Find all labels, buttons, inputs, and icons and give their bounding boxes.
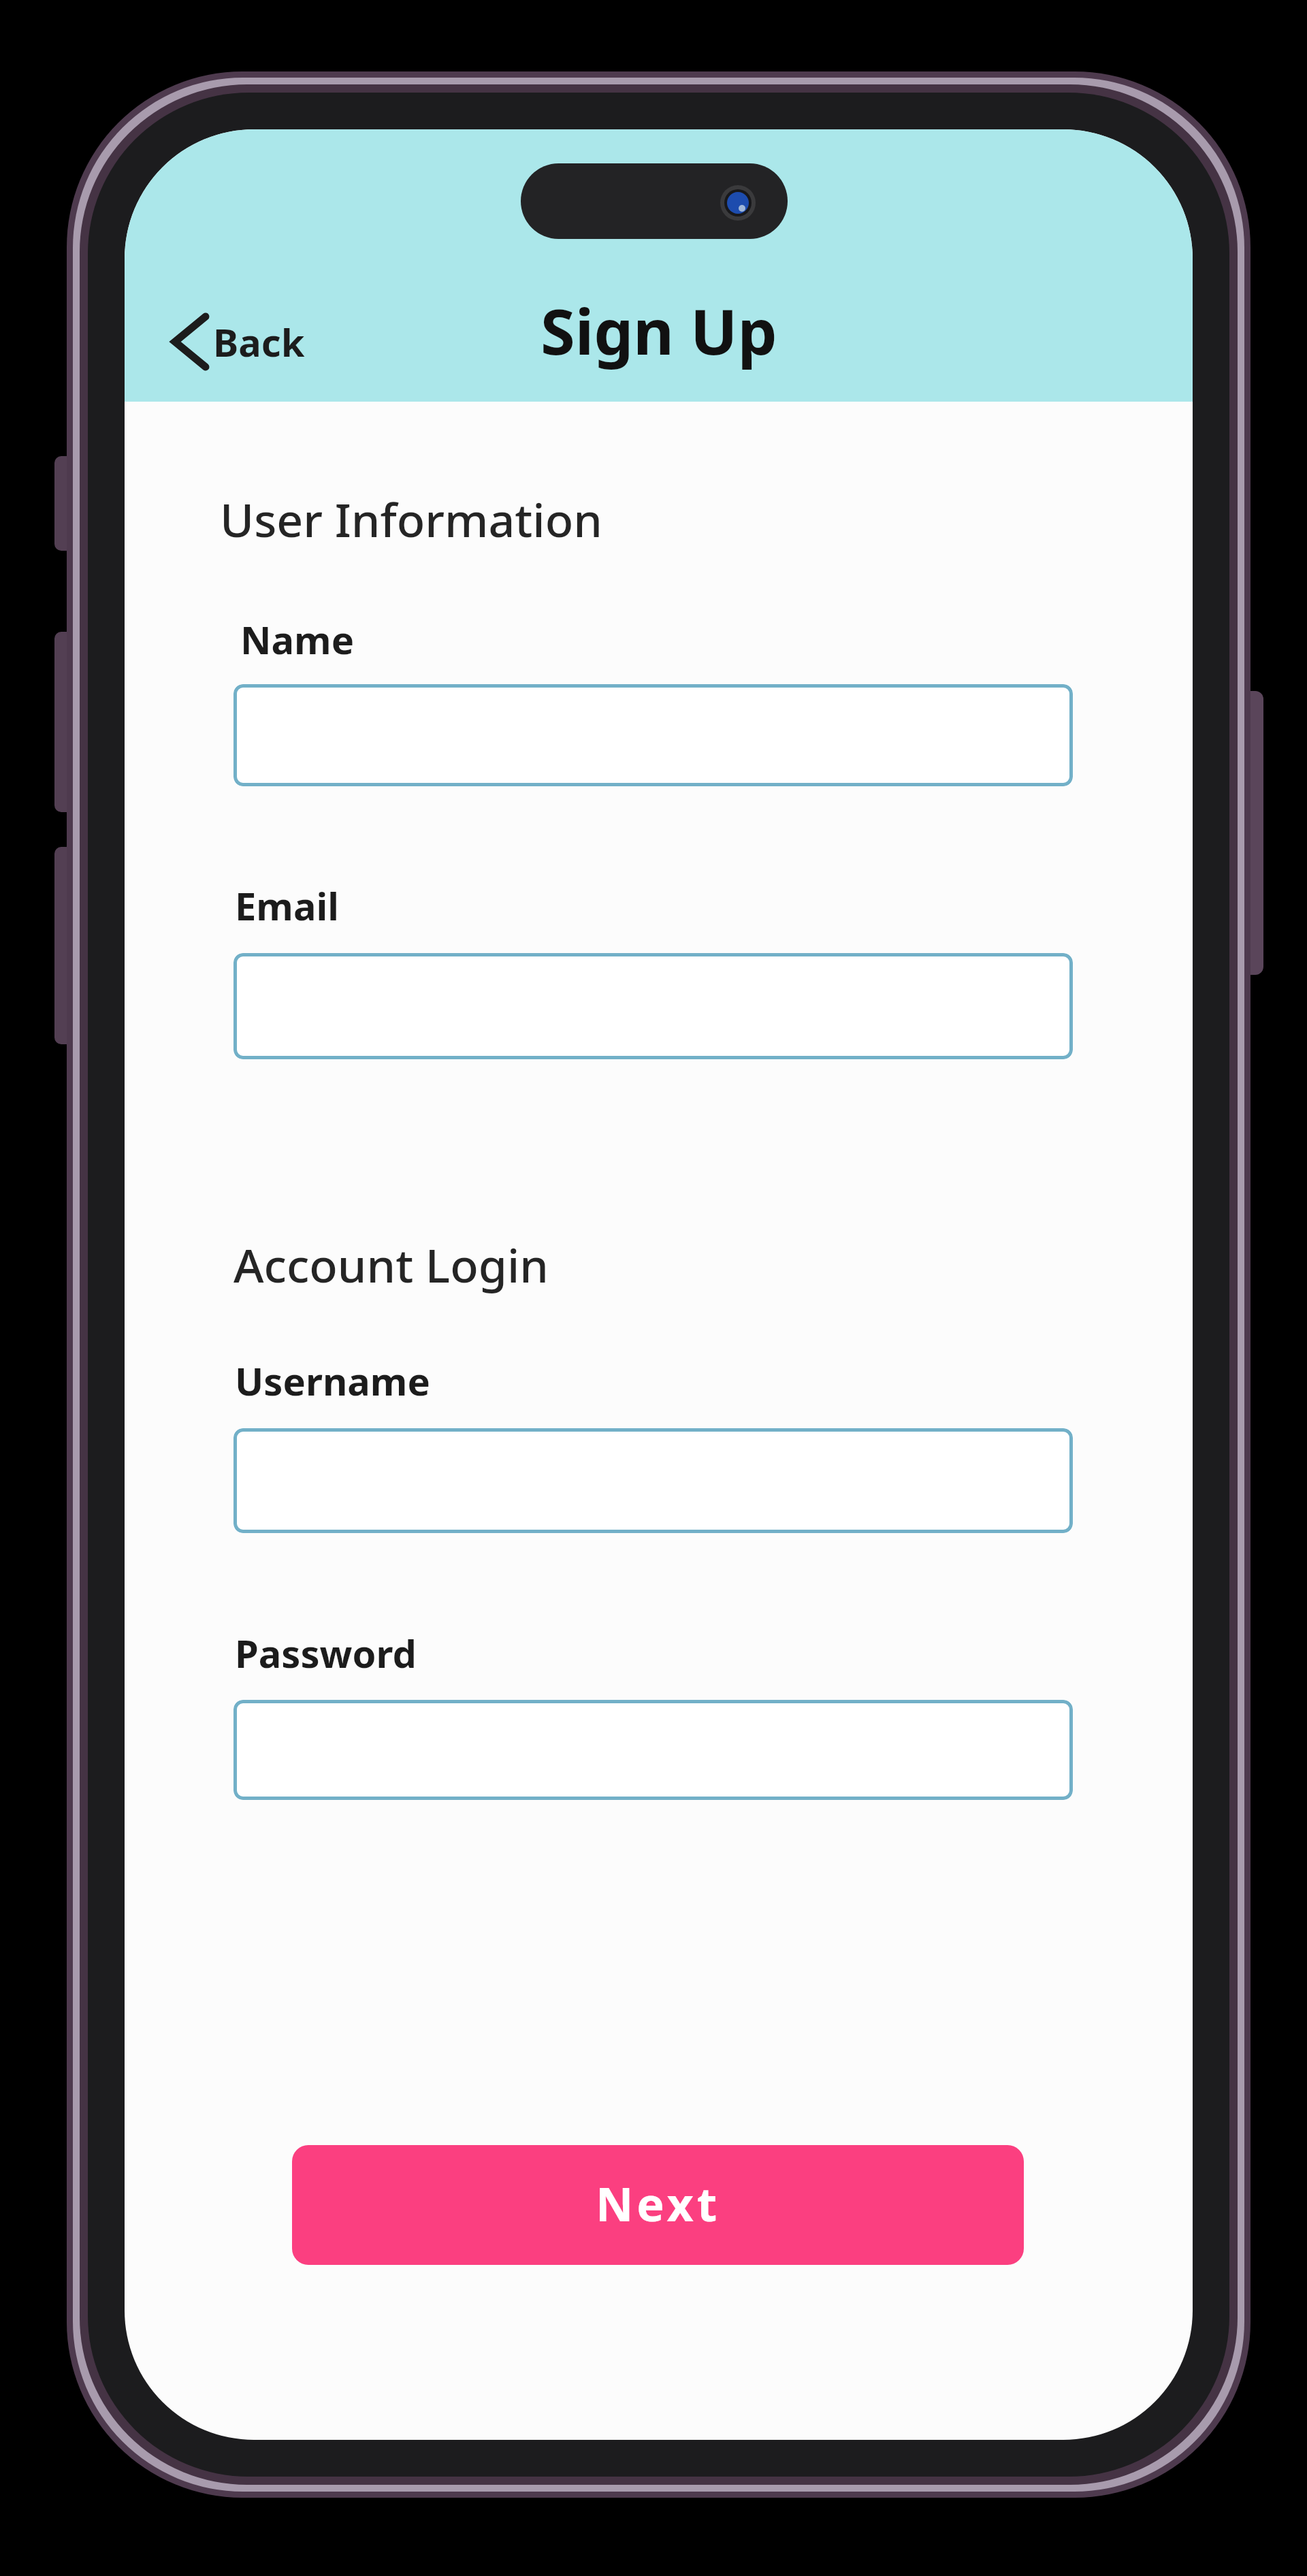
staticText: Account Login [233,1233,549,1296]
button[interactable]: Next [292,2145,1024,2265]
staticText: Sign Up [540,288,777,373]
staticText: Next [596,2172,721,2235]
button[interactable]: Back [170,312,305,371]
staticText: Back [213,316,305,368]
button[interactable] [233,953,1073,1059]
button[interactable] [233,1700,1073,1800]
staticText: Username [235,1355,430,1406]
button[interactable] [233,684,1073,786]
staticText: Email [235,880,339,931]
staticText: Password [235,1627,417,1679]
button[interactable] [233,1428,1073,1533]
staticText: User Information [220,487,602,551]
staticText: Name [240,613,355,665]
